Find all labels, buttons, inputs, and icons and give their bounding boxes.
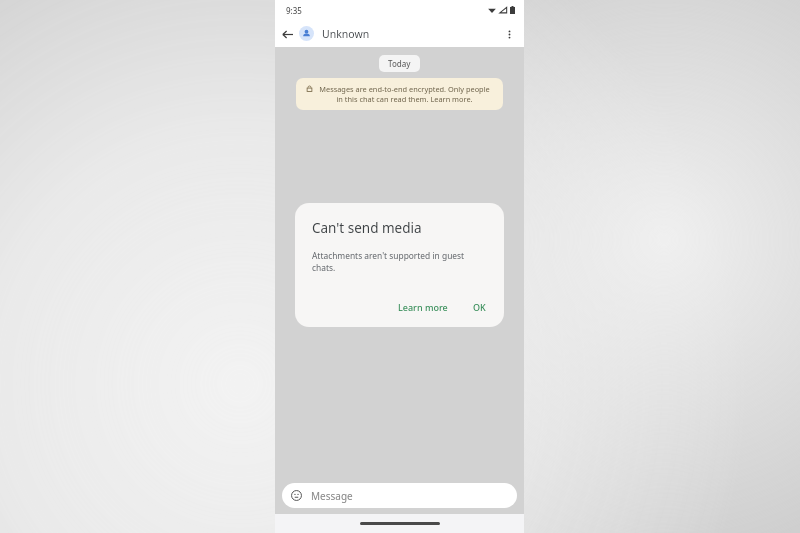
button[interactable]: Today <box>379 55 420 72</box>
button[interactable]: Message <box>282 483 517 508</box>
staticText: Can't send media <box>312 219 422 237</box>
staticText: Attachments aren't supported in guest ch… <box>312 250 480 274</box>
button[interactable]: Back <box>275 22 299 46</box>
button[interactable]: Learn more <box>391 297 455 317</box>
staticText: Unknown <box>322 27 370 41</box>
button[interactable]: More options <box>496 21 522 47</box>
staticText: Today <box>388 58 411 69</box>
staticText: Learn more <box>398 301 448 313</box>
staticText: Messages are end-to-end encrypted. Only … <box>316 84 493 104</box>
staticText: OK <box>473 301 486 313</box>
staticText: 9:35 <box>286 5 302 16</box>
button[interactable]: Unknown <box>299 20 496 47</box>
button[interactable]: Messages are end-to-end encrypted. Only … <box>296 78 503 110</box>
button[interactable]: OK <box>466 297 493 317</box>
staticText: Message <box>311 489 353 503</box>
